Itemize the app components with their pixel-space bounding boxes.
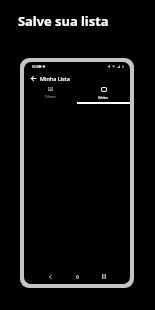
- staticText: Minha Lista: [40, 75, 70, 82]
- staticText: Salve sua lista: [18, 12, 109, 30]
- button[interactable]: Recent apps: [99, 272, 108, 281]
- button[interactable]: Séries: [77, 82, 130, 104]
- staticText: Filmes: [45, 94, 56, 99]
- button[interactable]: Back: [29, 74, 37, 82]
- staticText: 05:55: [32, 65, 41, 69]
- button[interactable]: Filmes: [24, 82, 77, 104]
- button[interactable]: Back: [46, 272, 55, 281]
- button[interactable]: Home: [73, 272, 82, 281]
- staticText: Séries: [98, 95, 109, 100]
